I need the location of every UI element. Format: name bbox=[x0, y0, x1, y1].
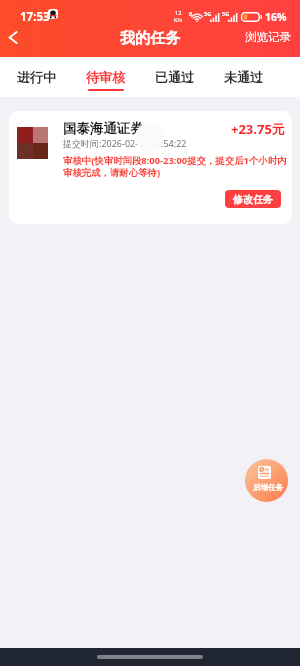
button[interactable]: 待审核 bbox=[71, 57, 140, 97]
button[interactable]: 国泰海通证券 bbox=[9, 111, 292, 224]
staticText: 6 bbox=[189, 10, 193, 17]
button[interactable]: 浏览记录 bbox=[237, 24, 299, 50]
staticText: 待审核 bbox=[86, 69, 125, 85]
staticText: 国泰海通证券 bbox=[63, 120, 144, 137]
button[interactable]: 进行中 bbox=[2, 57, 71, 97]
staticText: 进行中 bbox=[17, 69, 56, 85]
staticText: 我的任务 bbox=[120, 29, 180, 48]
staticText: K/s bbox=[174, 16, 183, 23]
staticText: 5G bbox=[204, 10, 212, 17]
staticText: 已通过 bbox=[155, 69, 194, 85]
staticText: 浏览记录 bbox=[245, 30, 291, 44]
staticText: 提交时间:2026-02-06 12:54:22 bbox=[63, 137, 187, 149]
button[interactable]: 新增任务 bbox=[245, 459, 288, 502]
staticText: 17:53 bbox=[20, 9, 50, 25]
button[interactable]: Back bbox=[0, 20, 26, 54]
staticText: 未通过 bbox=[224, 69, 263, 85]
button[interactable]: 修改任务 bbox=[225, 190, 281, 208]
staticText: 16% bbox=[265, 10, 287, 24]
staticText: +23.75元 bbox=[231, 120, 285, 138]
staticText: 12 bbox=[175, 9, 182, 16]
staticText: 修改任务 bbox=[233, 193, 273, 206]
button[interactable]: 未通过 bbox=[209, 57, 278, 97]
staticText: 后增任务 bbox=[253, 483, 283, 492]
staticText: 5G bbox=[222, 10, 230, 17]
button[interactable]: 已通过 bbox=[140, 57, 209, 97]
staticText: 审核中(快审时间段8:00-23:00提交，提交后1个小时内 审核完成，请耐心等… bbox=[63, 154, 287, 179]
